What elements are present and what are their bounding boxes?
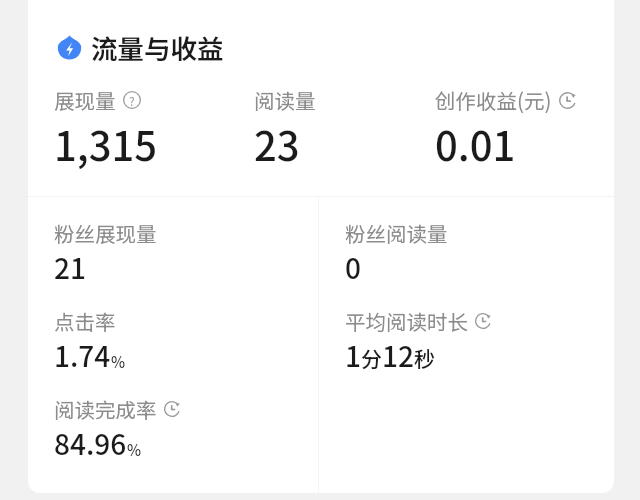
button[interactable]: 展现量 [54, 85, 158, 173]
staticText: 1.74 [54, 335, 111, 376]
staticText: 阅读量 [254, 85, 316, 115]
button[interactable]: 粉丝阅读量 [345, 218, 448, 289]
button[interactable]: Data updates with a delay [559, 92, 576, 109]
button[interactable]: Data updates with a delay [164, 401, 180, 417]
button[interactable]: 平均阅读时长 [345, 306, 491, 377]
staticText: 1,315 [54, 115, 158, 173]
staticText: 粉丝展现量 [54, 218, 157, 248]
staticText: 84.96 [54, 423, 127, 464]
staticText: 21 [54, 247, 86, 288]
staticText: 0 [345, 247, 361, 288]
staticText: ? [129, 92, 135, 109]
staticText: % [127, 439, 142, 461]
button[interactable]: 点击率 [54, 306, 126, 377]
button[interactable]: 创作收益(元) [435, 85, 576, 173]
staticText: 点击率 [54, 306, 116, 336]
staticText: 流量与收益 [91, 28, 224, 66]
staticText: 平均阅读时长 [345, 306, 468, 336]
button[interactable]: 流量与收益 [57, 28, 224, 66]
button[interactable]: Data updates with a delay [475, 313, 491, 329]
staticText: % [111, 351, 126, 373]
button[interactable]: Help about this metric [123, 91, 141, 109]
button[interactable]: 阅读量 [254, 85, 316, 173]
staticText: 创作收益(元) [435, 85, 552, 115]
button[interactable]: 粉丝展现量 [54, 218, 157, 289]
staticText: 23 [254, 115, 300, 173]
staticText: 展现量 [54, 85, 116, 115]
staticText: 1分12秒 [345, 335, 435, 376]
staticText: 粉丝阅读量 [345, 218, 448, 248]
staticText: 阅读完成率 [54, 394, 157, 424]
button[interactable]: 阅读完成率 [54, 394, 180, 465]
staticText: 0.01 [435, 115, 516, 173]
